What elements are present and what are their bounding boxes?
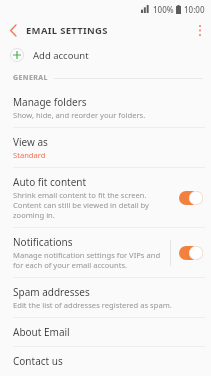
staticText: Manage folders xyxy=(13,95,87,109)
button[interactable]: Notifications xyxy=(0,228,211,277)
staticText: About Email xyxy=(13,325,70,339)
staticText: Show, hide, and reorder your folders. xyxy=(13,110,146,120)
staticText: EMAIL SETTINGS xyxy=(26,24,108,37)
staticText: Standard xyxy=(13,150,46,160)
staticText: Notifications xyxy=(13,235,73,249)
staticText: Spam addresses xyxy=(13,285,90,299)
staticText: 10:00 xyxy=(184,4,205,15)
staticText: Edit the list of addresses registered as… xyxy=(13,300,172,310)
button[interactable]: Add account xyxy=(0,42,211,68)
button[interactable]: Manage folders xyxy=(0,88,211,127)
button[interactable]: Auto fit content xyxy=(0,168,211,227)
staticText: Shrink email content to fit the screen. … xyxy=(13,190,173,220)
staticText: Add account xyxy=(33,49,89,62)
button[interactable]: Back xyxy=(0,18,26,42)
button[interactable]: More options xyxy=(189,18,211,42)
staticText: GENERAL xyxy=(13,73,48,83)
staticText: Auto fit content xyxy=(13,175,87,189)
staticText: View as xyxy=(13,135,48,149)
staticText: Manage notification settings for VIPs an… xyxy=(13,250,170,270)
staticText: Contact us xyxy=(13,354,63,368)
staticText: 100% xyxy=(153,4,174,15)
button[interactable]: Contact us xyxy=(0,347,211,375)
button[interactable]: Toggle xyxy=(179,191,203,205)
button[interactable]: Spam addresses xyxy=(0,278,211,317)
button[interactable]: Toggle xyxy=(179,246,203,260)
button[interactable]: View as xyxy=(0,128,211,167)
button[interactable]: About Email xyxy=(0,318,211,346)
